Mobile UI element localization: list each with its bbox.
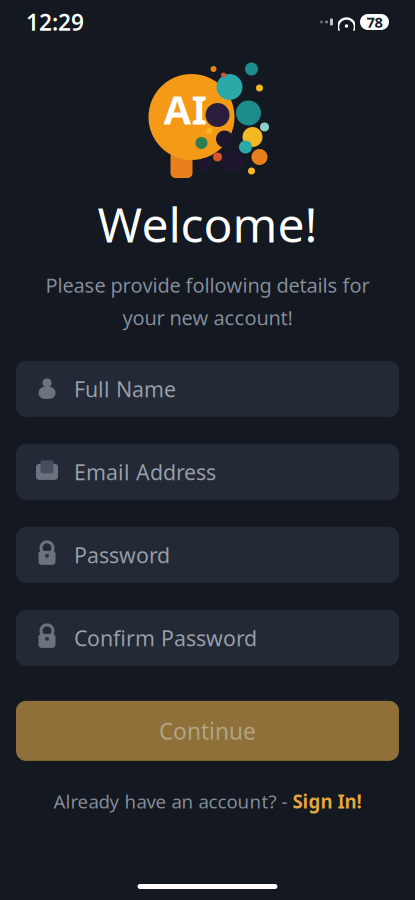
staticText: AI bbox=[163, 82, 207, 135]
staticText: 12:29 bbox=[26, 7, 84, 37]
staticText: Already have an account? - bbox=[53, 789, 287, 814]
staticText: Password bbox=[74, 541, 170, 569]
staticText: Please provide following details for bbox=[45, 272, 369, 298]
button[interactable]: Password bbox=[16, 527, 399, 583]
button[interactable]: Email Address bbox=[16, 444, 399, 500]
staticText: your new account! bbox=[122, 304, 292, 331]
button[interactable]: Continue bbox=[16, 701, 399, 761]
staticText: Full Name bbox=[74, 375, 176, 403]
button[interactable]: Already have an account? - bbox=[41, 781, 373, 822]
staticText: 78 bbox=[366, 12, 382, 32]
staticText: Continue bbox=[159, 716, 256, 746]
button[interactable]: Confirm Password bbox=[16, 610, 399, 666]
staticText: Email Address bbox=[74, 458, 216, 486]
staticText: Welcome! bbox=[97, 192, 317, 256]
staticText: Confirm Password bbox=[74, 624, 257, 652]
button[interactable]: Full Name bbox=[16, 361, 399, 417]
staticText: Sign In! bbox=[292, 789, 361, 814]
